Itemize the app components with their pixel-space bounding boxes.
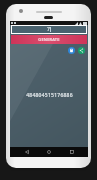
button[interactable]: Back bbox=[21, 147, 33, 157]
staticText: 484804515176886 bbox=[26, 92, 73, 99]
button[interactable]: Recent apps bbox=[66, 147, 78, 157]
button[interactable]: Copy bbox=[68, 47, 75, 54]
button[interactable]: Share bbox=[78, 47, 85, 54]
button[interactable]: 7 bbox=[12, 26, 86, 33]
button[interactable]: Home bbox=[43, 147, 55, 157]
staticText: GENERATE bbox=[38, 37, 60, 42]
button[interactable]: GENERATE bbox=[11, 35, 87, 44]
staticText: 7 bbox=[47, 26, 50, 33]
